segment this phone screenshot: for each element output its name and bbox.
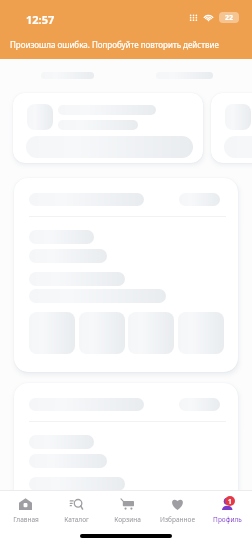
staticText: Избранное xyxy=(160,515,195,524)
button[interactable] xyxy=(211,93,252,163)
staticText: Произошла ошибка. Попробуйте повторить д… xyxy=(10,39,219,50)
staticText: Главная xyxy=(13,515,39,524)
button[interactable] xyxy=(14,178,238,372)
button[interactable]: Избранное xyxy=(152,498,202,524)
staticText: Профиль xyxy=(213,515,242,524)
button[interactable]: Каталог xyxy=(51,498,102,524)
button[interactable]: Главная xyxy=(0,498,51,524)
button[interactable]: 1 xyxy=(202,498,252,524)
staticText: Каталог xyxy=(64,515,89,524)
staticText: 12:57 xyxy=(26,12,55,27)
button[interactable] xyxy=(13,93,203,163)
staticText: 1 xyxy=(228,497,232,506)
button[interactable] xyxy=(14,383,238,545)
staticText: Корзина xyxy=(114,515,141,524)
button[interactable]: Корзина xyxy=(102,498,152,524)
staticText: 22 xyxy=(225,13,234,23)
